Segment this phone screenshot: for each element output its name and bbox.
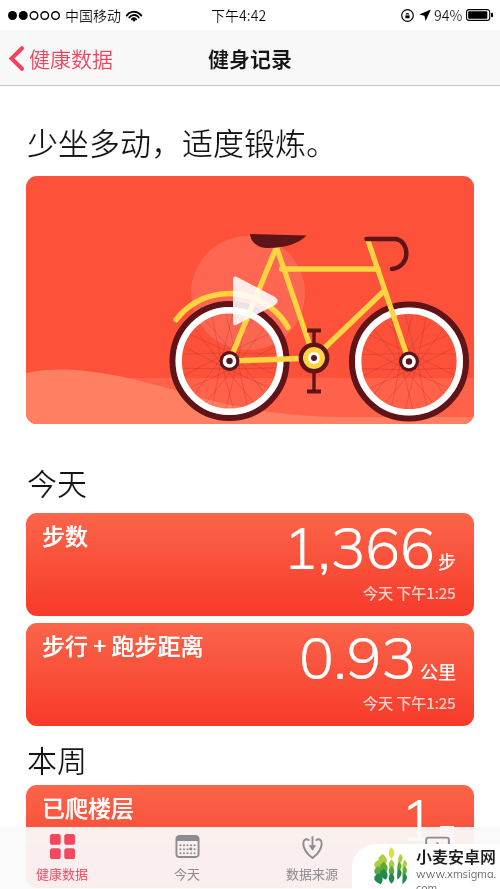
staticText: 0.93	[299, 623, 417, 694]
staticText: 步数	[42, 518, 88, 551]
staticText: 层	[438, 820, 456, 846]
staticText: 医疗急救卡	[405, 864, 471, 883]
staticText: 步	[438, 548, 456, 574]
staticText: 健康数据	[36, 864, 89, 883]
staticText: www.xmsigma.com	[416, 867, 500, 889]
button[interactable]: 今天	[125, 828, 250, 888]
staticText: 今天	[174, 864, 201, 883]
button[interactable]: Play fitness video	[26, 176, 474, 424]
staticText: 健身记录	[208, 43, 292, 73]
staticText: 中国移动	[65, 5, 121, 25]
staticText: 健康数据	[29, 43, 113, 73]
staticText: 1	[400, 785, 435, 856]
staticText: 少坐多动，适度锻炼。	[27, 119, 337, 164]
staticText: 公里	[420, 658, 456, 684]
button[interactable]: 已爬楼层	[26, 785, 474, 888]
button[interactable]: 步行 + 跑步距离	[26, 623, 474, 726]
staticText: 下午4:42	[211, 5, 267, 25]
staticText: 本周	[27, 737, 87, 780]
button[interactable]: 医疗急救卡	[375, 828, 500, 888]
staticText: 今天 下午1:25	[363, 582, 456, 604]
button[interactable]: 健康数据	[0, 828, 125, 888]
staticText: 数据来源	[286, 864, 339, 883]
staticText: 今天	[27, 460, 87, 503]
staticText: 步行 + 跑步距离	[42, 628, 204, 661]
button[interactable]: 步数	[26, 513, 474, 616]
staticText: 小麦安卓网	[416, 844, 497, 867]
staticText: 今天 下午1:25	[363, 854, 456, 876]
button[interactable]: 健康数据	[0, 37, 119, 79]
staticText: 今天 下午1:25	[363, 692, 456, 714]
button[interactable]: 数据来源	[250, 828, 375, 888]
staticText: 已爬楼层	[42, 790, 134, 823]
staticText: 1,366	[283, 513, 435, 584]
staticText: 94%	[434, 5, 463, 25]
